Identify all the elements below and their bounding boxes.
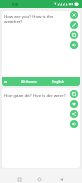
- staticText: How are you? How is the weather?: [4, 13, 60, 24]
- staticText: Hoe gaan dit? Hoe is die weer?: [4, 92, 66, 98]
- button[interactable]: Listen: [70, 120, 78, 128]
- button[interactable]: Clear: [70, 11, 78, 19]
- button[interactable]: Home: [33, 173, 45, 183]
- button[interactable]: Back: [55, 173, 67, 183]
- staticText: English: [52, 79, 65, 84]
- button[interactable]: English: [44, 77, 72, 86]
- button[interactable]: Share: [70, 110, 78, 118]
- button[interactable]: Favourite: [70, 100, 78, 108]
- button[interactable]: Afrikaans: [15, 77, 43, 86]
- button[interactable]: Listen: [70, 41, 78, 49]
- button[interactable]: Menu: [2, 77, 11, 86]
- button[interactable]: Copy: [70, 90, 78, 98]
- button[interactable]: Edit: [70, 21, 78, 29]
- button[interactable]: Copy: [70, 31, 78, 39]
- staticText: Afrikaans: [21, 79, 37, 84]
- button[interactable]: Recents: [13, 173, 25, 183]
